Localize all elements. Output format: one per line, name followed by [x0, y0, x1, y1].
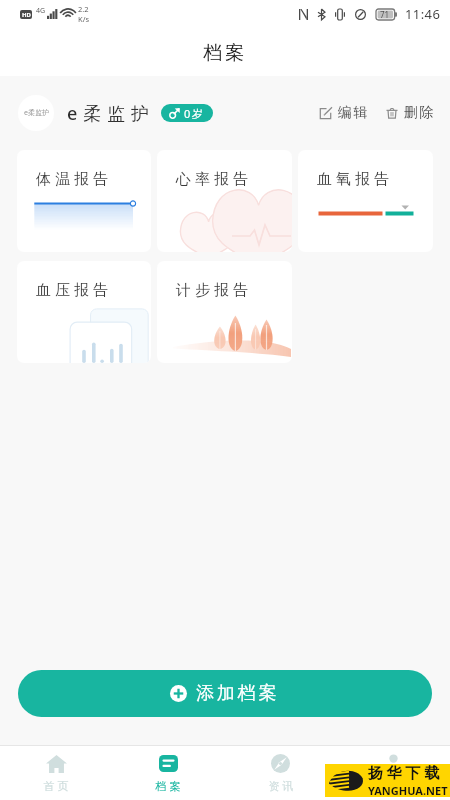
button[interactable]: 血氧报告: [298, 150, 433, 252]
staticText: 扬华下载: [368, 764, 444, 783]
staticText: 11:46: [405, 5, 441, 23]
staticText: 编辑: [337, 104, 368, 122]
staticText: e柔监护: [67, 101, 156, 126]
button[interactable]: 我的: [337, 746, 450, 800]
staticText: 心率报告: [174, 170, 250, 189]
button[interactable]: 体温报告: [17, 150, 151, 252]
staticText: 档案: [0, 41, 450, 65]
button[interactable]: 删除: [383, 98, 437, 128]
button[interactable]: 编辑: [316, 98, 371, 128]
staticText: 2.2: [78, 4, 89, 14]
staticText: e柔监护: [24, 108, 49, 118]
staticText: 我的: [380, 779, 408, 793]
staticText: K/s: [78, 14, 90, 24]
staticText: YANGHUA.NET: [368, 783, 448, 797]
button[interactable]: 首页: [0, 746, 112, 800]
button[interactable]: 0岁: [161, 104, 213, 122]
button[interactable]: 添加档案: [18, 670, 432, 717]
staticText: 档案: [154, 779, 182, 793]
staticText: 4G: [36, 6, 46, 16]
button[interactable]: 心率报告: [157, 150, 292, 252]
staticText: 0岁: [184, 106, 205, 121]
button[interactable]: 血压报告: [17, 261, 151, 363]
button[interactable]: 计步报告: [157, 261, 292, 363]
staticText: 血氧报告: [315, 170, 391, 189]
staticText: 删除: [403, 104, 434, 122]
staticText: 资讯: [267, 779, 295, 793]
button[interactable]: 资讯: [224, 746, 337, 800]
staticText: HD: [22, 11, 31, 19]
staticText: 71: [380, 9, 390, 20]
staticText: 计步报告: [174, 281, 250, 300]
staticText: 添加档案: [196, 682, 280, 705]
button[interactable]: 档案: [112, 746, 224, 800]
staticText: 血压报告: [34, 281, 110, 300]
staticText: 体温报告: [34, 170, 110, 189]
button[interactable]: Profile avatar: [18, 95, 54, 131]
staticText: 首页: [42, 779, 70, 793]
